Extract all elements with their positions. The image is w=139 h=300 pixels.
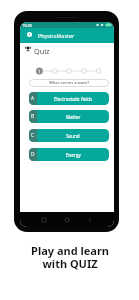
staticText: C <box>31 132 35 139</box>
staticText: A <box>31 95 35 102</box>
button[interactable]: Recents <box>40 216 48 224</box>
button[interactable]: A <box>29 92 109 105</box>
button[interactable]: C <box>29 129 109 142</box>
button[interactable]: Home <box>63 216 71 224</box>
staticText: PhysicsMaster <box>38 32 75 39</box>
staticText: B <box>31 113 35 120</box>
staticText: Electrostatic fields <box>54 96 93 102</box>
staticText: Sound <box>66 133 80 139</box>
button[interactable]: What carries a wave? <box>29 79 109 87</box>
staticText: Quiz <box>34 46 50 56</box>
staticText: Energy <box>66 152 81 158</box>
staticText: 19:28 <box>22 23 32 28</box>
button[interactable]: Back <box>86 216 94 224</box>
staticText: D <box>31 151 35 158</box>
staticText: 1 <box>38 69 41 74</box>
staticText: Play and learn with QUIZ <box>31 243 109 271</box>
button[interactable]: D <box>29 148 109 161</box>
staticText: What carries a wave? <box>49 80 90 86</box>
button[interactable]: B <box>29 110 109 123</box>
staticText: Matter <box>66 114 81 120</box>
button[interactable]: Back <box>27 32 32 37</box>
